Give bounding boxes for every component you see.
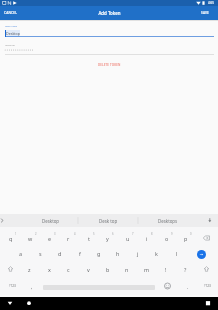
staticText: d bbox=[58, 250, 62, 257]
button[interactable]: o bbox=[157, 231, 176, 245]
button[interactable]: y bbox=[98, 231, 117, 245]
button[interactable]: v bbox=[79, 262, 98, 276]
staticText: 2 bbox=[35, 232, 37, 236]
staticText: ? bbox=[184, 266, 187, 273]
staticText: 9 bbox=[171, 232, 173, 236]
staticText: 7 bbox=[132, 232, 134, 236]
button[interactable]: , bbox=[22, 279, 41, 293]
button[interactable]: p bbox=[176, 231, 195, 245]
button[interactable]: Shift bbox=[1, 262, 20, 276]
button[interactable]: Hide keyboard bbox=[3, 297, 17, 310]
staticText: Desktops bbox=[158, 218, 178, 224]
button[interactable]: u bbox=[118, 231, 137, 245]
staticText: ?123 bbox=[204, 284, 211, 288]
staticText: Add Token bbox=[98, 10, 121, 16]
staticText: SAVE bbox=[201, 11, 210, 15]
staticText: n bbox=[125, 266, 129, 273]
button[interactable]: Backspace bbox=[197, 231, 216, 245]
staticText: 3 bbox=[54, 232, 56, 236]
staticText: t bbox=[88, 235, 90, 242]
staticText: p bbox=[184, 235, 188, 242]
staticText: 0 bbox=[190, 232, 192, 236]
staticText: l bbox=[176, 250, 178, 257]
staticText: b bbox=[106, 266, 110, 273]
button[interactable]: r bbox=[59, 231, 78, 245]
button[interactable]: m bbox=[137, 262, 156, 276]
staticText: v bbox=[87, 266, 90, 273]
staticText: y bbox=[106, 235, 109, 242]
button[interactable]: Emoji bbox=[158, 279, 177, 293]
button[interactable]: Desktops bbox=[140, 214, 196, 227]
button[interactable]: q bbox=[1, 231, 20, 245]
button[interactable]: g bbox=[89, 246, 108, 260]
staticText: 5 bbox=[93, 232, 95, 236]
staticText: CANCEL bbox=[4, 11, 17, 15]
staticText: q bbox=[9, 235, 13, 242]
staticText: Desktop bbox=[6, 31, 20, 36]
button[interactable]: Recent apps bbox=[201, 297, 215, 310]
button[interactable]: x bbox=[40, 262, 59, 276]
staticText: . bbox=[187, 283, 189, 290]
staticText: x bbox=[48, 266, 51, 273]
button[interactable]: n bbox=[117, 262, 136, 276]
button[interactable]: Enter bbox=[192, 245, 211, 264]
staticText: j bbox=[137, 250, 139, 257]
staticText: m bbox=[144, 266, 150, 273]
button[interactable]: d bbox=[50, 246, 69, 260]
button[interactable]: f bbox=[70, 246, 89, 260]
button[interactable]: SAVE bbox=[195, 7, 215, 19]
button[interactable]: CANCEL bbox=[0, 7, 21, 19]
staticText: Desk top bbox=[99, 218, 118, 224]
staticText: o bbox=[165, 235, 169, 242]
button[interactable]: t bbox=[79, 231, 98, 245]
staticText: DELETE TOKEN bbox=[98, 63, 121, 67]
staticText: Desktop bbox=[42, 218, 60, 224]
staticText: g bbox=[97, 250, 101, 257]
button[interactable]: s bbox=[31, 246, 50, 260]
staticText: f bbox=[79, 250, 81, 257]
staticText: ?123 bbox=[9, 284, 16, 288]
staticText: w bbox=[28, 235, 33, 242]
staticText: ! bbox=[165, 266, 167, 273]
button[interactable]: . bbox=[178, 279, 197, 293]
staticText: h bbox=[116, 250, 120, 257]
staticText: a bbox=[19, 250, 23, 257]
button[interactable]: i bbox=[137, 231, 156, 245]
staticText: z bbox=[28, 266, 31, 273]
staticText: Secret Key bbox=[5, 44, 15, 47]
button[interactable] bbox=[0, 22, 218, 37]
button[interactable]: Desktop bbox=[23, 214, 79, 227]
button[interactable]: ? bbox=[176, 262, 195, 276]
staticText: c bbox=[67, 266, 70, 273]
button[interactable]: ?123 bbox=[198, 279, 216, 293]
staticText: 8 bbox=[151, 232, 153, 236]
staticText: 1 bbox=[15, 232, 17, 236]
staticText: 6 bbox=[112, 232, 114, 236]
staticText: r bbox=[67, 235, 70, 242]
staticText: 4 bbox=[74, 232, 76, 236]
button[interactable]: a bbox=[11, 246, 30, 260]
button[interactable]: ?123 bbox=[3, 279, 21, 293]
button[interactable]: c bbox=[59, 262, 78, 276]
staticText: 4:55 bbox=[208, 1, 214, 5]
staticText: , bbox=[31, 283, 33, 290]
button[interactable]: Shift bbox=[197, 262, 216, 276]
button[interactable]: z bbox=[20, 262, 39, 276]
button[interactable]: DELETE TOKEN bbox=[91, 59, 127, 70]
button[interactable]: j bbox=[128, 246, 147, 260]
staticText: Token Name bbox=[5, 25, 17, 28]
button[interactable]: ! bbox=[156, 262, 175, 276]
button[interactable]: e bbox=[40, 231, 59, 245]
staticText: e bbox=[48, 235, 52, 242]
staticText: u bbox=[126, 235, 130, 242]
staticText: s bbox=[39, 250, 42, 257]
button[interactable]: Home bbox=[22, 297, 36, 310]
button[interactable]: k bbox=[147, 246, 166, 260]
button[interactable]: l bbox=[167, 246, 186, 260]
button[interactable]: Desk top bbox=[80, 214, 136, 227]
staticText: k bbox=[155, 250, 158, 257]
button[interactable]: h bbox=[108, 246, 127, 260]
button[interactable]: b bbox=[98, 262, 117, 276]
button[interactable]: w bbox=[21, 231, 40, 245]
